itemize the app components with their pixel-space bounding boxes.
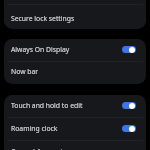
button[interactable]: Current forecast <box>4 140 146 150</box>
staticText: Always On Display <box>11 45 119 54</box>
staticText: Touch and hold to edit <box>11 101 119 110</box>
staticText: Now bar <box>11 67 136 76</box>
button[interactable]: Secure lock settings <box>4 6 146 28</box>
button[interactable]: Now bar <box>4 61 146 84</box>
staticText: Roaming clock <box>11 124 119 133</box>
staticText: Current forecast <box>11 147 136 150</box>
button[interactable]: Roaming clock <box>4 117 146 138</box>
staticText: Secure lock settings <box>11 14 136 23</box>
button[interactable]: Always On Display <box>4 39 146 60</box>
button[interactable]: Touch and hold to edit <box>4 95 146 116</box>
